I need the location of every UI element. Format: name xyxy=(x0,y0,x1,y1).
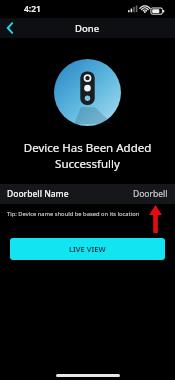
staticText: Done xyxy=(75,22,100,35)
button[interactable]: Back xyxy=(0,18,20,38)
staticText: 4:21 xyxy=(24,3,41,15)
staticText: Device Has Been Added Successfully xyxy=(0,140,175,171)
staticText: Doorbell xyxy=(133,188,168,200)
button[interactable]: LIVE VIEW xyxy=(10,238,165,260)
staticText: Tip: Device name should be based on its … xyxy=(7,210,140,218)
staticText: LIVE VIEW xyxy=(69,244,106,254)
button[interactable]: Doorbell Name xyxy=(0,184,175,204)
staticText: Doorbell Name xyxy=(7,188,69,200)
